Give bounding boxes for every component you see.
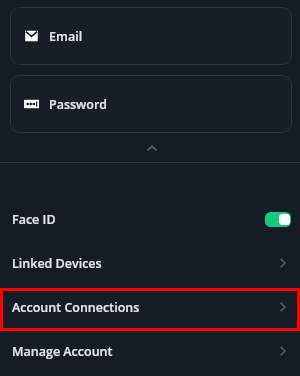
button[interactable]: Collapse section — [0, 134, 300, 163]
staticText: Linked Devices — [12, 255, 102, 272]
staticText: Password — [49, 96, 108, 113]
button[interactable]: Manage Account — [0, 330, 300, 372]
staticText: Face ID — [12, 211, 56, 228]
staticText: Account Connections — [12, 299, 140, 316]
staticText: Email — [49, 28, 83, 45]
button[interactable]: Account Connections — [0, 286, 300, 328]
button[interactable]: Email — [10, 7, 292, 65]
button[interactable]: Linked Devices — [0, 242, 300, 284]
button[interactable]: Face ID — [0, 198, 300, 240]
button[interactable]: Password — [10, 75, 292, 133]
staticText: Manage Account — [12, 343, 113, 360]
